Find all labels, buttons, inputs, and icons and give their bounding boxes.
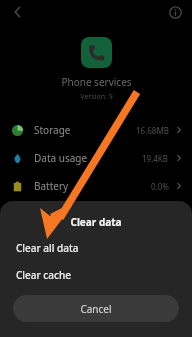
staticText: Version: 9 bbox=[80, 92, 113, 102]
staticText: 16.68MB bbox=[136, 125, 169, 136]
button[interactable]: Storage bbox=[0, 116, 192, 144]
staticText: 0.0% bbox=[151, 181, 169, 192]
staticText: Cancel bbox=[80, 302, 112, 316]
staticText: Storage bbox=[34, 123, 71, 137]
button[interactable]: Clear cache bbox=[0, 266, 192, 284]
staticText: Data usage bbox=[34, 151, 88, 165]
staticText: Clear data bbox=[70, 215, 122, 229]
button[interactable]: Cancel bbox=[13, 295, 179, 322]
button[interactable]: Clear all data bbox=[0, 239, 192, 257]
staticText: 19.4KB bbox=[142, 153, 169, 164]
button[interactable]: App info bbox=[164, 1, 186, 23]
button[interactable]: Phone services icon bbox=[81, 37, 112, 68]
staticText: Clear all data bbox=[16, 241, 79, 255]
staticText: Battery bbox=[34, 179, 69, 193]
button[interactable]: Battery bbox=[0, 172, 192, 200]
button[interactable]: Data usage bbox=[0, 144, 192, 172]
staticText: Phone services bbox=[61, 75, 132, 89]
staticText: Clear cache bbox=[16, 268, 71, 282]
button[interactable]: Back bbox=[6, 0, 30, 24]
